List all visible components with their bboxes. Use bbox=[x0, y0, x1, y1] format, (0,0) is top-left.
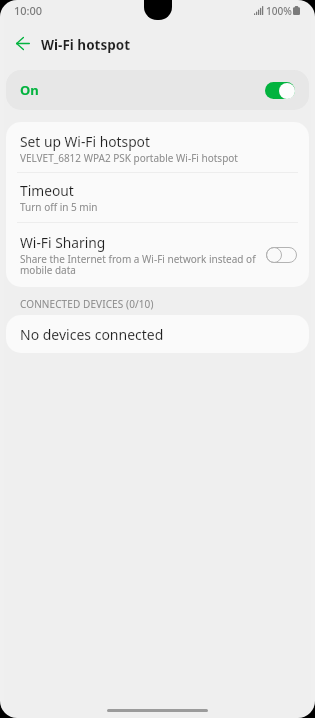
button[interactable]: Set up Wi-Fi hotspot bbox=[6, 122, 309, 172]
button[interactable]: No devices connected bbox=[6, 315, 309, 353]
staticText: No devices connected bbox=[20, 325, 164, 344]
staticText: On bbox=[20, 81, 39, 99]
button[interactable]: Navigate up bbox=[10, 31, 36, 55]
staticText: Timeout bbox=[20, 181, 74, 200]
button[interactable]: Timeout bbox=[6, 173, 309, 222]
staticText: CONNECTED DEVICES (0/10) bbox=[20, 297, 154, 311]
staticText: Share the Internet from a Wi-Fi network … bbox=[20, 252, 260, 277]
staticText: 100% bbox=[266, 4, 292, 18]
button[interactable]: Wi-Fi Sharing bbox=[6, 223, 309, 287]
staticText: 10:00 bbox=[14, 3, 43, 18]
staticText: Turn off in 5 min bbox=[20, 200, 98, 214]
staticText: Set up Wi-Fi hotspot bbox=[20, 132, 150, 151]
staticText: Wi-Fi hotspot bbox=[41, 36, 131, 54]
staticText: Wi-Fi Sharing bbox=[20, 233, 106, 252]
staticText: VELVET_6812 WPA2 PSK portable Wi-Fi hots… bbox=[20, 151, 238, 165]
button[interactable]: On bbox=[6, 70, 309, 110]
